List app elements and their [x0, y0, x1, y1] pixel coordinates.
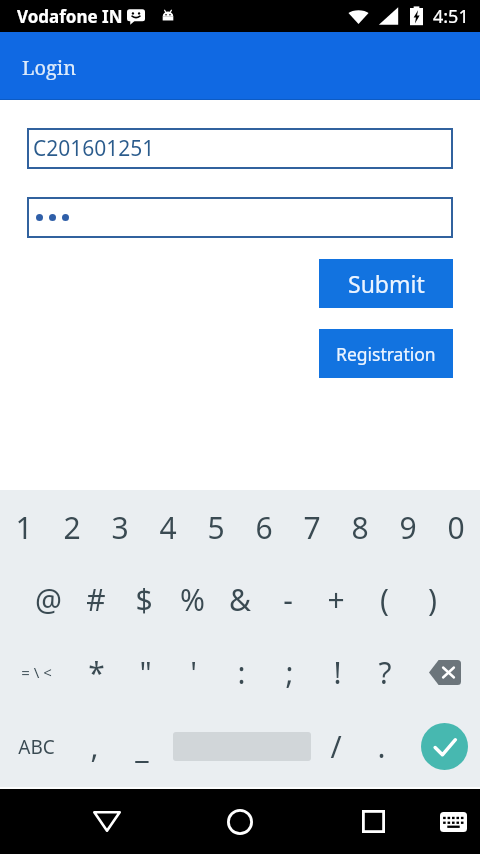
staticText: 2: [63, 507, 81, 548]
staticText: Vodafone IN: [17, 5, 123, 28]
staticText: &: [229, 579, 251, 620]
button[interactable]: 2: [48, 490, 96, 564]
staticText: _: [135, 726, 149, 767]
button[interactable]: Backspace: [409, 635, 480, 709]
button[interactable]: (: [360, 564, 408, 635]
staticText: 4:51: [433, 4, 469, 29]
staticText: 1: [15, 507, 33, 548]
staticText: *: [88, 652, 105, 693]
button[interactable]: Space: [167, 709, 316, 784]
button[interactable]: ): [408, 564, 456, 635]
button[interactable]: 0: [432, 490, 480, 564]
staticText: ABC: [18, 734, 55, 760]
staticText: Registration: [336, 342, 436, 366]
staticText: (: [380, 579, 389, 620]
button[interactable]: Recents: [266, 789, 480, 854]
staticText: /: [330, 726, 342, 767]
button[interactable]: Switch keyboard: [426, 789, 480, 854]
button[interactable]: ;: [265, 635, 313, 709]
button[interactable]: 9: [384, 490, 432, 564]
button[interactable]: +: [312, 564, 360, 635]
button[interactable]: #: [72, 564, 120, 635]
button[interactable]: ': [169, 635, 217, 709]
button[interactable]: _: [116, 709, 167, 784]
staticText: Submit: [348, 268, 425, 299]
staticText: 9: [399, 507, 417, 548]
button[interactable]: Home: [214, 789, 266, 854]
button[interactable]: Enter: [408, 709, 480, 784]
staticText: :: [237, 652, 246, 693]
staticText: Login: [22, 54, 77, 81]
staticText: 6: [255, 507, 273, 548]
staticText: -: [283, 579, 293, 620]
button[interactable]: *: [72, 635, 121, 709]
staticText: 5: [207, 507, 225, 548]
staticText: C201601251: [33, 134, 155, 163]
button[interactable]: ?: [361, 635, 409, 709]
staticText: $: [135, 579, 153, 620]
button[interactable]: /: [316, 709, 355, 784]
button[interactable]: :: [217, 635, 265, 709]
button[interactable]: 4: [144, 490, 192, 564]
button[interactable]: -: [264, 564, 312, 635]
button[interactable]: ": [121, 635, 169, 709]
button[interactable]: 7: [288, 490, 336, 564]
staticText: .: [377, 726, 386, 767]
button[interactable]: 8: [336, 490, 384, 564]
button[interactable]: !: [313, 635, 361, 709]
button[interactable]: [27, 197, 453, 238]
staticText: 0: [447, 507, 465, 548]
button[interactable]: C201601251: [27, 128, 453, 169]
staticText: = \ <: [21, 662, 52, 682]
button[interactable]: 6: [240, 490, 288, 564]
staticText: 3: [111, 507, 129, 548]
staticText: @: [35, 579, 62, 620]
button[interactable]: ,: [73, 709, 116, 784]
staticText: %: [180, 579, 205, 620]
button[interactable]: Submit: [319, 259, 453, 308]
staticText: ): [428, 579, 437, 620]
button[interactable]: Registration: [319, 329, 453, 378]
button[interactable]: $: [120, 564, 168, 635]
staticText: ;: [285, 652, 294, 693]
staticText: ": [139, 652, 152, 693]
button[interactable]: Back: [0, 789, 214, 854]
staticText: #: [86, 579, 106, 620]
staticText: 8: [351, 507, 369, 548]
button[interactable]: 1: [0, 490, 48, 564]
staticText: 7: [303, 507, 321, 548]
button[interactable]: ABC: [0, 709, 73, 784]
staticText: !: [333, 652, 342, 693]
button[interactable]: &: [216, 564, 264, 635]
staticText: 4: [159, 507, 177, 548]
button[interactable]: .: [355, 709, 408, 784]
button[interactable]: @: [24, 564, 72, 635]
button[interactable]: 5: [192, 490, 240, 564]
button[interactable]: 3: [96, 490, 144, 564]
button[interactable]: %: [168, 564, 216, 635]
staticText: +: [327, 579, 345, 620]
staticText: ,: [90, 726, 99, 767]
staticText: ?: [378, 652, 392, 693]
button[interactable]: = \ <: [0, 635, 72, 709]
staticText: ': [190, 652, 197, 693]
